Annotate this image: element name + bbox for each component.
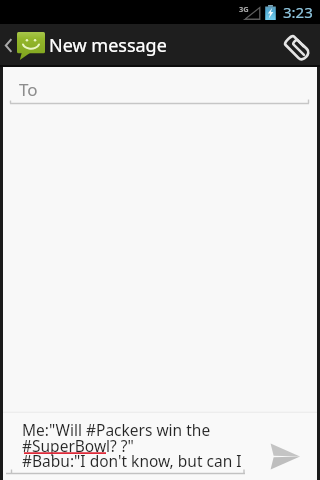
button[interactable]: To xyxy=(0,67,320,105)
staticText: 3G xyxy=(239,4,249,14)
staticText: Me:"Will #Packers win the xyxy=(22,419,211,440)
staticText: New message xyxy=(49,33,167,58)
button[interactable]: Attach xyxy=(270,24,320,67)
staticText: 3:23 xyxy=(283,2,313,22)
staticText: #Babu:"I don't know, but can I xyxy=(22,450,242,471)
staticText: #SuperBowl? ?" xyxy=(22,435,134,456)
button[interactable]: Send xyxy=(246,411,320,480)
staticText: To xyxy=(19,78,38,101)
button[interactable]: Navigate up xyxy=(0,24,47,67)
